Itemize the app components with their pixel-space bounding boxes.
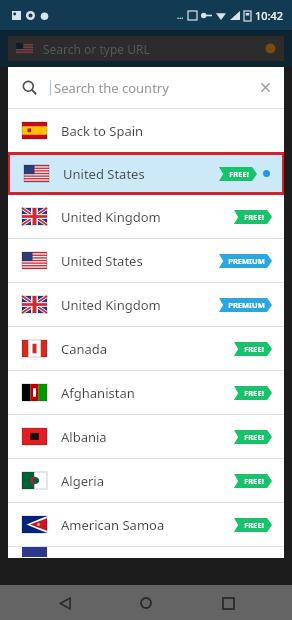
staticText: FREE! [229,169,249,179]
staticText: FREE! [244,344,264,354]
staticText: Search the country [54,79,169,97]
staticText: Albania [61,428,107,446]
staticText: FREE! [244,212,264,222]
button[interactable]: Back [48,586,82,620]
staticText: American Samoa [61,516,165,534]
staticText: Back to Spain [61,122,144,140]
button[interactable]: Search [8,67,284,108]
staticText: FREE! [244,476,264,486]
button[interactable]: Afghanistan [8,371,284,414]
button[interactable]: Home [129,586,163,620]
button[interactable]: Back to Spain [8,109,284,152]
button[interactable]: United States [8,239,284,282]
button[interactable]: Canada [8,327,284,370]
staticText: United Kingdom [61,296,161,314]
button[interactable]: United Kingdom [8,195,284,238]
staticText: United States [61,252,143,270]
button[interactable]: Algeria [8,459,284,502]
staticText: ... [177,10,184,21]
button[interactable]: United States [10,155,282,192]
staticText: 10:42 [255,8,284,23]
other: Search [22,80,37,95]
button[interactable]: American Samoa [8,503,284,546]
staticText: United States [63,165,145,183]
button[interactable]: Clear search [259,81,272,94]
staticText: FREE! [244,388,264,398]
staticText: Canada [61,340,108,358]
button[interactable]: Recent apps [211,586,245,620]
staticText: PREMIUM [228,300,265,310]
staticText: Afghanistan [61,384,135,402]
staticText: FREE! [244,520,264,530]
staticText: Algeria [61,472,105,490]
staticText: Search or type URL [43,41,150,57]
button[interactable] [8,547,284,558]
staticText: PREMIUM [228,256,265,266]
staticText: FREE! [244,432,264,442]
button[interactable]: Albania [8,415,284,458]
button[interactable]: United Kingdom [8,283,284,326]
staticText: United Kingdom [61,208,161,226]
